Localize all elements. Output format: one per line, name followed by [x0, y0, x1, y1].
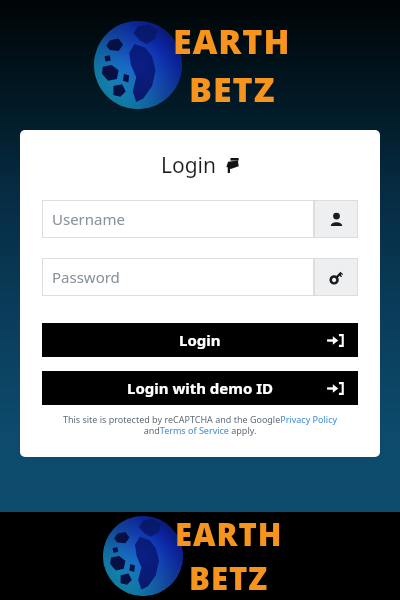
staticText: EARTH	[175, 513, 283, 555]
button[interactable]: Password	[42, 258, 358, 296]
staticText: Username	[52, 209, 125, 229]
staticText: BETZ	[189, 557, 269, 599]
staticText: Login	[179, 330, 221, 350]
button[interactable]: Password	[314, 258, 358, 296]
button[interactable]: Login	[42, 323, 358, 357]
button[interactable]: Username	[42, 200, 358, 238]
staticText: Password	[52, 267, 120, 287]
staticText: Login with demo ID	[127, 378, 274, 398]
staticText: EARTH	[173, 18, 291, 64]
button[interactable]: Username	[314, 200, 358, 238]
staticText: BETZ	[189, 66, 276, 112]
staticText: This site is protected by reCAPTCHA and …	[42, 413, 358, 437]
staticText: Login	[161, 151, 217, 180]
button[interactable]: Login with demo ID	[42, 371, 358, 405]
